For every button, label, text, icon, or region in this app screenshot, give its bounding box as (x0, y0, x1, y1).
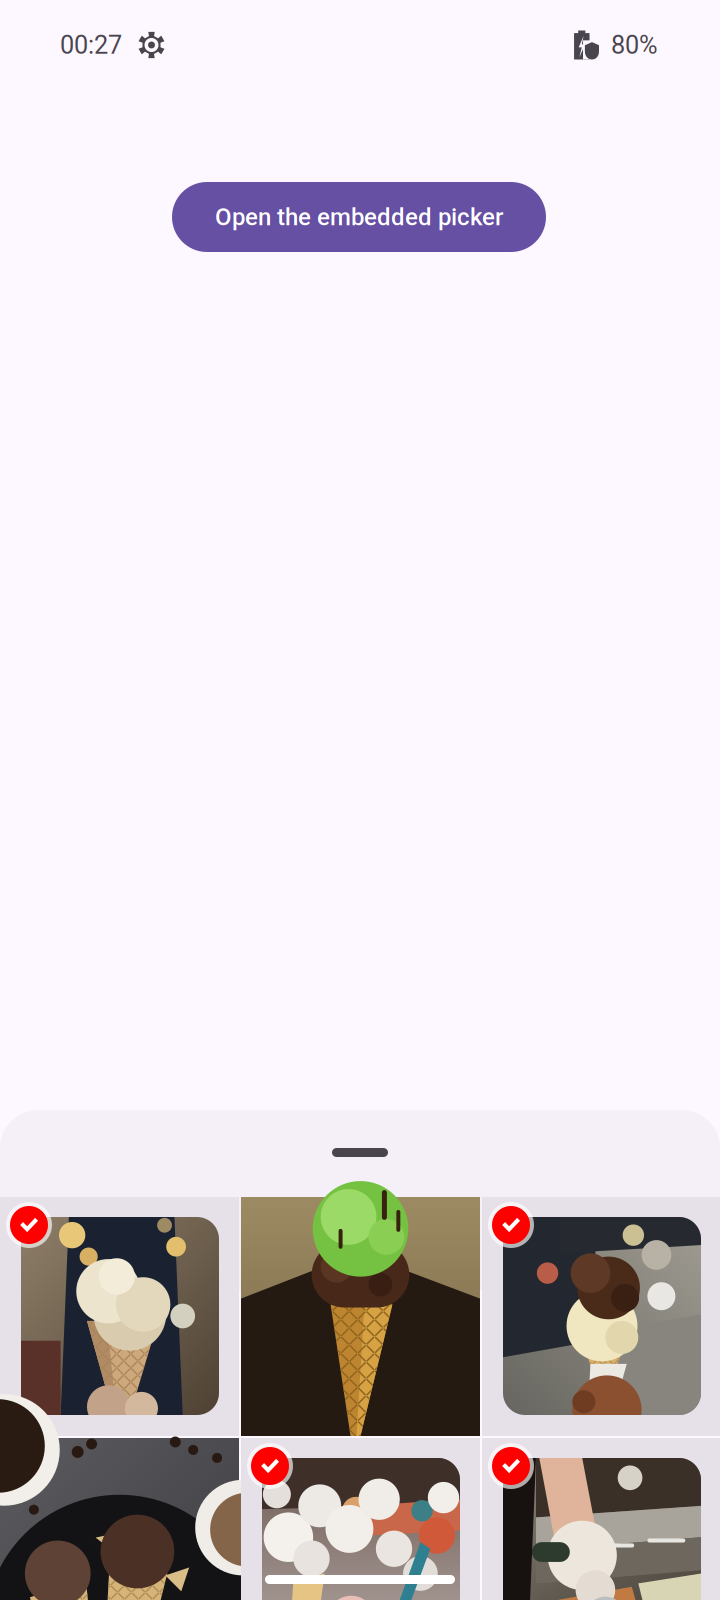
button[interactable]: Open the embedded picker (172, 182, 546, 252)
button[interactable]: Photo 1, selected (0, 1197, 239, 1436)
staticText: 80% (611, 30, 658, 60)
button[interactable]: Photo 5, selected (241, 1438, 480, 1600)
button[interactable]: Photo 2 (241, 1197, 480, 1436)
button[interactable]: Photo 6, selected (482, 1438, 720, 1600)
staticText: 00:27 (60, 30, 122, 60)
button[interactable]: Photo 3, selected (482, 1197, 720, 1436)
staticText: Open the embedded picker (215, 203, 503, 231)
button[interactable]: Photo 4 (0, 1438, 239, 1600)
